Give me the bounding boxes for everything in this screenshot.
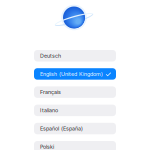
staticText: Polski [40, 143, 54, 150]
button[interactable]: Español (España) [34, 123, 116, 134]
staticText: Deutsch [40, 52, 61, 59]
button[interactable]: Polski [34, 141, 116, 150]
button[interactable]: Français [34, 86, 116, 98]
button[interactable]: Deutsch [34, 50, 116, 61]
staticText: Français [40, 89, 61, 95]
staticText: Español (España) [40, 125, 83, 132]
button[interactable]: English (United Kingdom) [34, 68, 116, 80]
staticText: Italiano [40, 107, 58, 114]
button[interactable]: Italiano [34, 105, 116, 116]
staticText: English (United Kingdom) [40, 71, 103, 77]
